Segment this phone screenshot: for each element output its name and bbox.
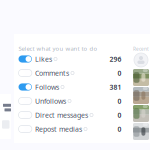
staticText: 296 [109, 54, 121, 64]
staticText: Recent [133, 46, 149, 52]
staticText: Unfollows [35, 96, 66, 106]
button[interactable]: Likes [18, 52, 121, 66]
staticText: Direct messages [35, 110, 88, 120]
staticText: Likes [35, 54, 52, 64]
staticText: 0 [117, 96, 121, 106]
staticText: Repost medias [35, 124, 82, 134]
button[interactable]: Follows [18, 80, 121, 94]
button[interactable]: Unfollows [18, 94, 121, 108]
button[interactable]: Comments [18, 66, 121, 80]
staticText: 0 [117, 124, 121, 134]
staticText: 381 [109, 82, 121, 92]
staticText: Comments [35, 68, 69, 78]
button[interactable]: Direct messages [18, 108, 121, 122]
staticText: Select what you want to do [18, 44, 97, 52]
staticText: 0 [117, 68, 121, 78]
staticText: 0 [117, 110, 121, 120]
button[interactable]: Repost medias [18, 122, 121, 136]
staticText: Follows [35, 82, 59, 92]
